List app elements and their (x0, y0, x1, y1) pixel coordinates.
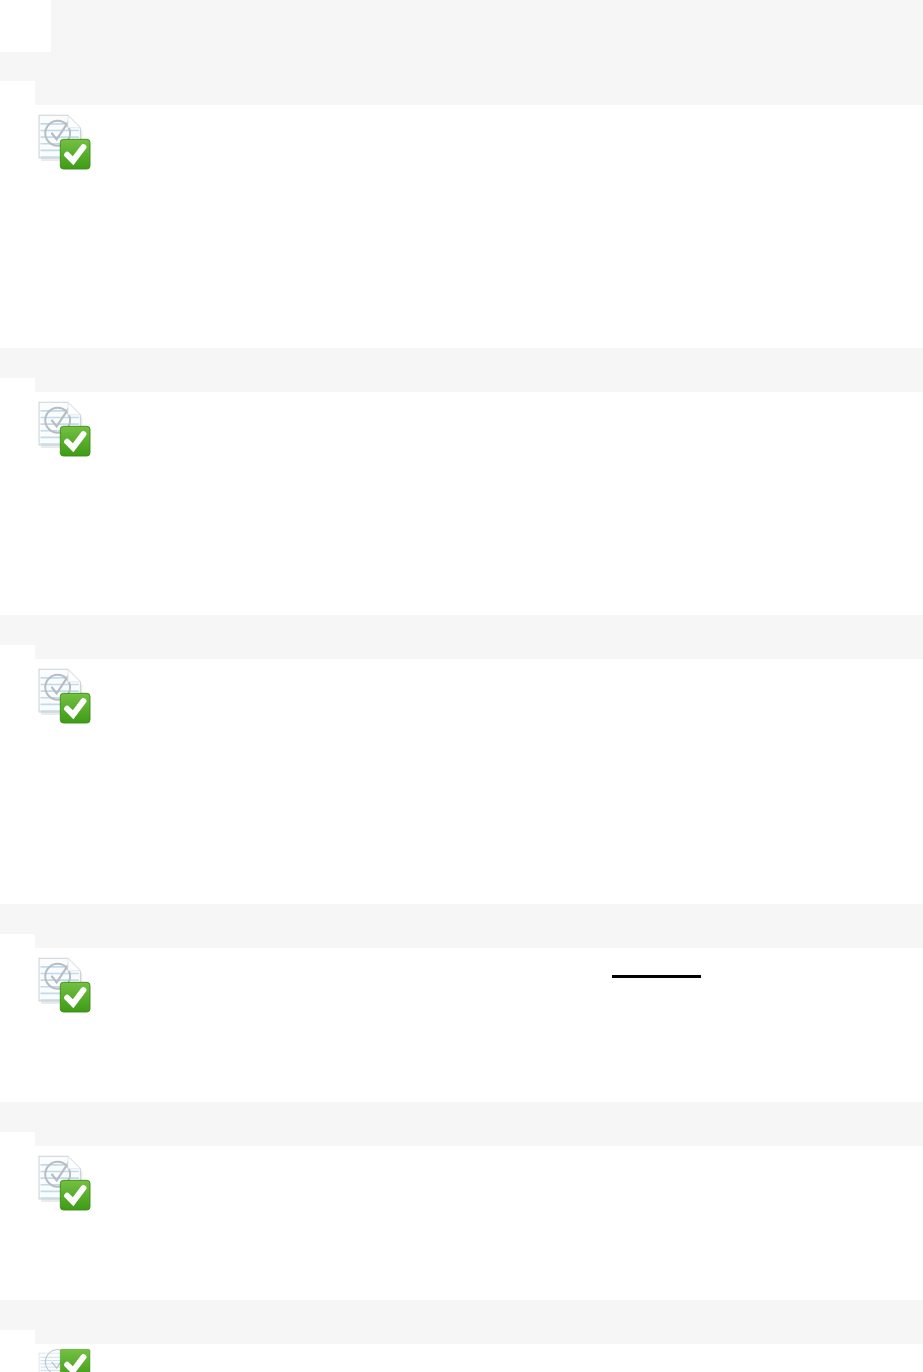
other: Image placeholder (38, 400, 91, 457)
other: Image placeholder (38, 1154, 91, 1211)
other: Image placeholder (38, 1352, 91, 1372)
other: Image placeholder (38, 113, 91, 170)
button[interactable]: Image placeholder (0, 392, 923, 615)
button[interactable]: Image placeholder (0, 105, 923, 348)
button[interactable]: Image placeholder (0, 1344, 923, 1372)
other: Image placeholder (38, 956, 91, 1013)
other: Image placeholder (38, 667, 91, 724)
button[interactable]: Image placeholder (0, 1146, 923, 1300)
button[interactable]: Image placeholder (0, 659, 923, 904)
button[interactable]: Image placeholder (0, 948, 923, 1102)
